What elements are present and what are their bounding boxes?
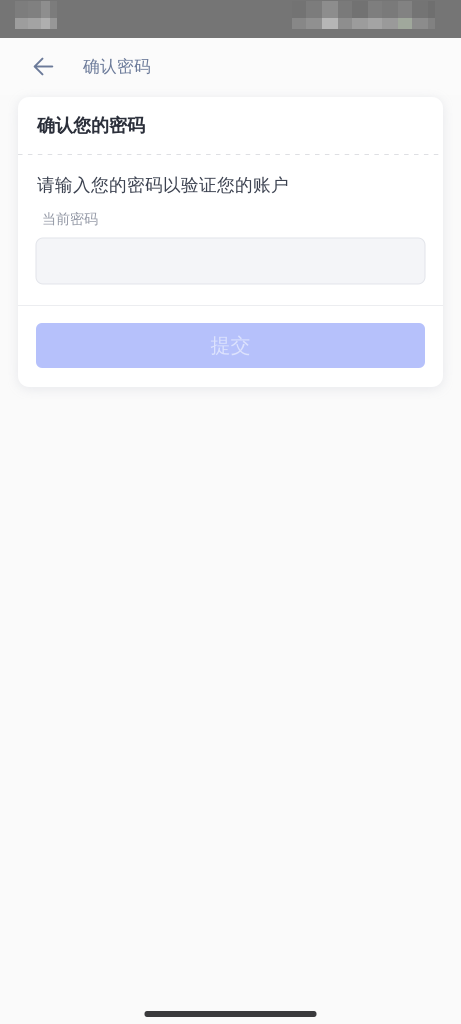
staticText: 确认密码 [83,56,151,77]
staticText: 当前密码 [42,210,98,228]
button[interactable]: 提交 [36,323,425,368]
button[interactable]: Back [22,44,64,88]
staticText: 确认您的密码 [37,114,145,137]
staticText: 请输入您的密码以验证您的账户 [37,174,289,196]
staticText: 提交 [210,333,250,358]
